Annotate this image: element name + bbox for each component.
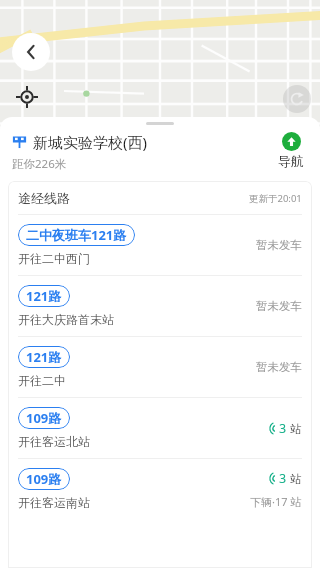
button[interactable]: 121路 bbox=[8, 337, 312, 397]
staticText: 距你226米 bbox=[12, 156, 67, 172]
button[interactable]: 导航 Navigate bbox=[276, 132, 306, 169]
staticText: 站 bbox=[290, 472, 302, 486]
button[interactable]: Back bbox=[12, 33, 50, 71]
button[interactable]: 109路 bbox=[8, 459, 312, 519]
staticText: 下辆·17 站 bbox=[250, 494, 302, 509]
staticText: 站 bbox=[290, 422, 302, 436]
staticText: 新城实验学校(西) bbox=[33, 132, 148, 152]
staticText: 二中夜班车121路 bbox=[26, 226, 127, 244]
staticText: 暂未发车 bbox=[256, 299, 302, 313]
button[interactable]: 121路 bbox=[8, 276, 312, 336]
button[interactable]: My location bbox=[14, 84, 40, 110]
staticText: 更新于20:01 bbox=[249, 192, 302, 205]
staticText: 暂未发车 bbox=[256, 360, 302, 374]
button[interactable]: Refresh bbox=[283, 85, 311, 113]
staticText: 暂未发车 bbox=[256, 238, 302, 252]
staticText: 开往客运南站 bbox=[18, 495, 90, 510]
staticText: 109路 bbox=[26, 470, 62, 488]
button[interactable]: 二中夜班车121路 bbox=[8, 215, 312, 275]
staticText: 途经线路 bbox=[18, 190, 70, 206]
staticText: 开往二中西门 bbox=[18, 251, 90, 266]
staticText: 开往二中 bbox=[18, 373, 66, 388]
staticText: 3 bbox=[279, 420, 287, 437]
staticText: 121路 bbox=[26, 287, 62, 305]
staticText: 121路 bbox=[26, 348, 62, 366]
staticText: 109路 bbox=[26, 409, 62, 427]
button[interactable]: 109路 bbox=[8, 398, 312, 458]
staticText: 开往客运北站 bbox=[18, 434, 90, 449]
staticText: 开往大庆路首末站 bbox=[18, 312, 114, 327]
staticText: 3 bbox=[279, 470, 287, 487]
staticText: 导航 bbox=[278, 153, 304, 169]
